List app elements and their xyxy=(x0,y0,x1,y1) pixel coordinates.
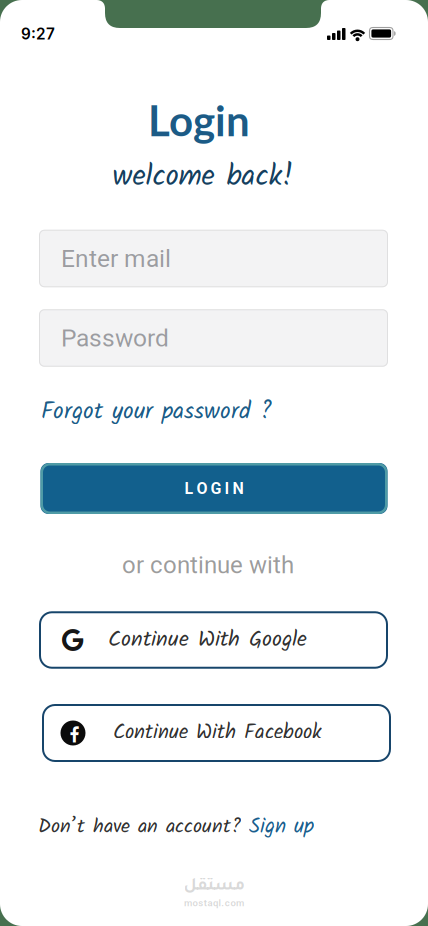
button[interactable]: Password xyxy=(39,309,388,367)
staticText: Continue With Google xyxy=(108,623,307,657)
staticText: مستقل xyxy=(183,878,245,896)
staticText: mostaql.com xyxy=(184,897,244,909)
staticText: Password xyxy=(61,324,169,352)
staticText: Enter mail xyxy=(61,244,171,273)
staticText:  xyxy=(69,726,79,744)
staticText: or continue with xyxy=(122,551,294,579)
staticText: Sign up xyxy=(249,810,314,844)
button[interactable]: L O G I N xyxy=(40,463,387,514)
button[interactable]: Enter mail xyxy=(39,230,388,287)
staticText: Forgot your password ? xyxy=(41,393,272,431)
staticText:  xyxy=(62,627,84,653)
button[interactable]:  xyxy=(39,611,388,669)
staticText: 9:27 xyxy=(21,25,55,43)
button[interactable]:  xyxy=(42,704,391,762)
staticText: Login xyxy=(148,95,250,145)
staticText: Don’t have an account? xyxy=(38,811,249,843)
staticText: welcome back! xyxy=(112,154,293,200)
staticText: Continue With Facebook xyxy=(113,717,322,749)
staticText: L O G I N xyxy=(184,479,243,498)
button[interactable]: Sign up xyxy=(249,810,314,844)
button[interactable]: Forgot your password ? xyxy=(41,393,272,431)
